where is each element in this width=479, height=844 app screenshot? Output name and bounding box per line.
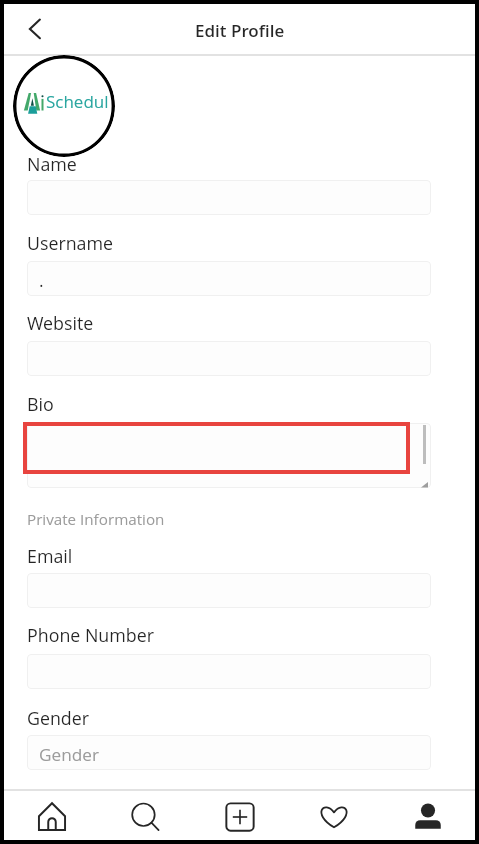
button[interactable] bbox=[27, 573, 431, 608]
staticText: Email bbox=[27, 544, 73, 568]
staticText: Username bbox=[27, 231, 114, 255]
button[interactable]: New post bbox=[193, 791, 287, 840]
button[interactable] bbox=[27, 180, 431, 215]
staticText: Schedul bbox=[46, 90, 109, 113]
staticText: Bio bbox=[27, 392, 54, 416]
button[interactable]: Home bbox=[4, 791, 99, 840]
staticText: Edit Profile bbox=[195, 19, 285, 42]
button[interactable]: . bbox=[27, 261, 431, 296]
button[interactable] bbox=[27, 654, 431, 689]
button[interactable]: Profile bbox=[381, 791, 475, 840]
button[interactable]: Back bbox=[15, 9, 55, 49]
staticText: Website bbox=[27, 311, 94, 335]
button[interactable] bbox=[27, 341, 431, 376]
button[interactable]: Activity bbox=[287, 791, 381, 840]
staticText: Private Information bbox=[27, 509, 165, 530]
button[interactable]: Gender bbox=[27, 735, 431, 770]
staticText: Gender bbox=[27, 706, 90, 730]
button[interactable]: Change profile photo bbox=[13, 55, 115, 157]
staticText: Name bbox=[27, 152, 77, 176]
button[interactable] bbox=[27, 423, 431, 488]
button[interactable]: Search bbox=[99, 791, 193, 840]
staticText: . bbox=[39, 269, 44, 292]
staticText: Phone Number bbox=[27, 623, 154, 647]
staticText: Gender bbox=[39, 743, 99, 766]
